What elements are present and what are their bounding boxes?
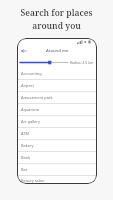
staticText: Radius: 4.5 km	[70, 60, 94, 65]
button[interactable]: Art gallery	[17, 116, 97, 128]
staticText: ATM	[21, 131, 29, 136]
staticText: Airport	[21, 83, 34, 88]
staticText: around you	[32, 20, 81, 32]
button[interactable]: Bakery	[17, 140, 97, 152]
staticText: Beauty salon	[21, 178, 45, 183]
button[interactable]: ATM	[17, 128, 97, 140]
button[interactable]: Airport	[17, 80, 97, 92]
button[interactable]: Radius slider	[20, 58, 68, 67]
button[interactable]: Bar	[17, 164, 97, 176]
button[interactable]: Amusement park	[17, 92, 97, 104]
button[interactable]: Accounting	[17, 68, 97, 80]
staticText: Around me	[46, 48, 69, 54]
staticText: Search for places	[20, 7, 93, 19]
staticText: Bar	[21, 167, 28, 172]
staticText: Amusement park	[21, 95, 53, 100]
staticText: Accounting	[21, 71, 42, 76]
staticText: Art gallery	[21, 119, 40, 124]
button[interactable]: Bank	[17, 152, 97, 164]
staticText: Aquarium	[21, 107, 40, 112]
staticText: Bank	[21, 155, 31, 160]
button[interactable]: Back	[19, 46, 28, 55]
button[interactable]: Aquarium	[17, 104, 97, 116]
button[interactable]: Beauty salon	[17, 176, 97, 184]
staticText: Bakery	[21, 143, 34, 148]
